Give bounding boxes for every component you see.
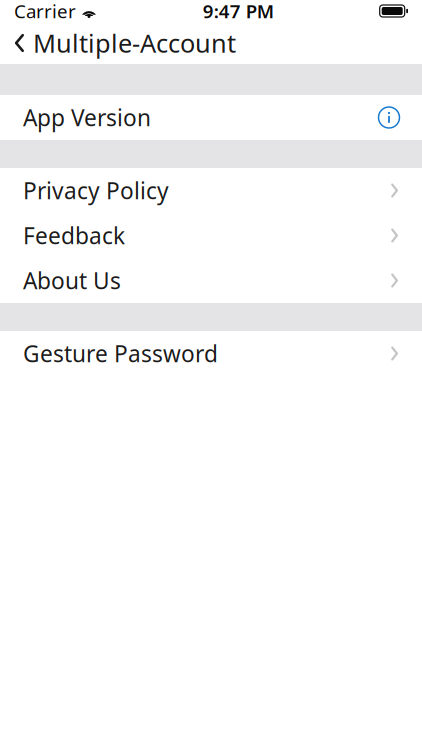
button[interactable]: About Us xyxy=(0,258,422,303)
staticText: Privacy Policy xyxy=(23,175,169,205)
staticText: Carrier xyxy=(14,0,76,23)
staticText: Gesture Password xyxy=(23,338,218,368)
staticText: App Version xyxy=(23,102,151,132)
button[interactable]: Multiple-Account xyxy=(0,22,248,64)
button[interactable]: App Version xyxy=(0,95,422,140)
staticText: Multiple-Account xyxy=(33,26,236,60)
button[interactable]: Gesture Password xyxy=(0,331,422,376)
staticText: About Us xyxy=(23,265,121,295)
staticText: 9:47 PM xyxy=(203,0,274,23)
staticText: Feedback xyxy=(23,220,125,250)
button[interactable]: Privacy Policy xyxy=(0,168,422,213)
button[interactable]: Feedback xyxy=(0,213,422,258)
